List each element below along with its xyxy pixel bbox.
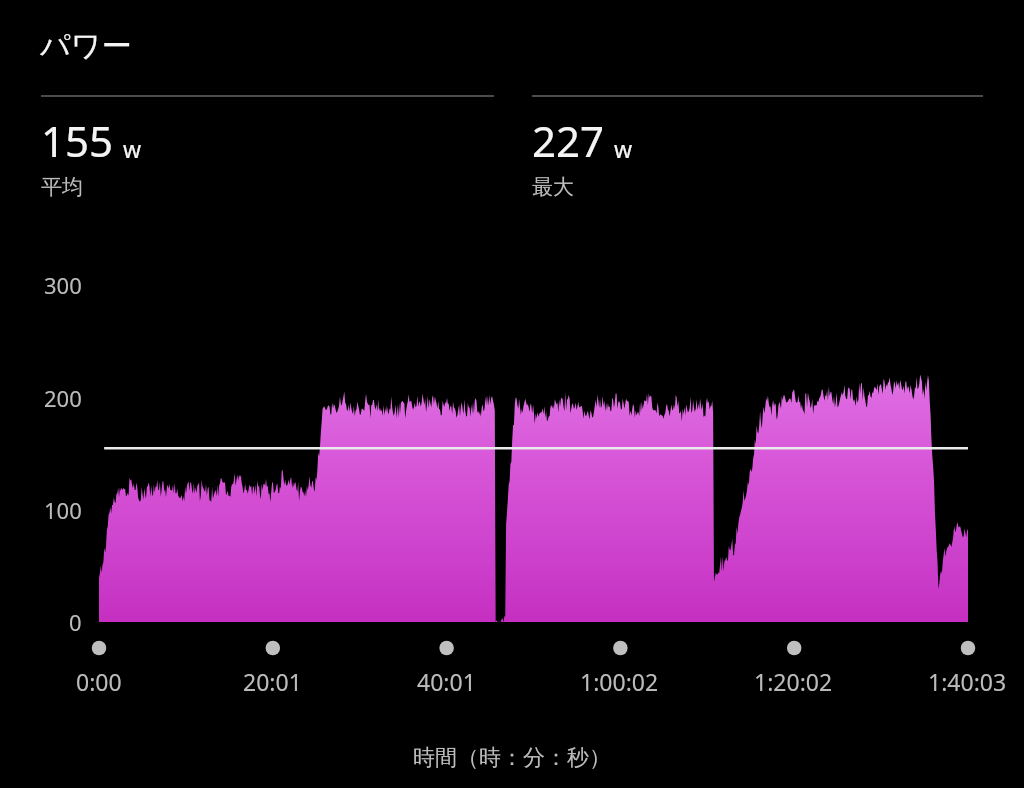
button[interactable]: 300 — [0, 244, 1024, 744]
staticText: 155 — [41, 112, 114, 169]
staticText: パワー — [40, 27, 132, 65]
staticText: 平均 — [41, 174, 83, 200]
staticText: 時間（時：分：秒） — [413, 744, 611, 772]
staticText: 0:00 — [76, 666, 122, 697]
staticText: 1:20:02 — [754, 666, 833, 697]
button[interactable]: 155 — [41, 95, 494, 200]
button[interactable]: パワー — [40, 27, 132, 65]
staticText: 20:01 — [243, 666, 302, 697]
staticText: 200 — [44, 383, 82, 413]
button[interactable]: 227 — [532, 95, 983, 200]
staticText: w — [614, 133, 633, 164]
staticText: 100 — [44, 495, 82, 525]
staticText: 0 — [69, 607, 82, 637]
staticText: 227 — [532, 112, 605, 169]
staticText: 1:40:03 — [928, 666, 1007, 697]
staticText: 1:00:02 — [580, 666, 659, 697]
staticText: 最大 — [532, 174, 574, 200]
staticText: 300 — [44, 270, 82, 300]
staticText: 40:01 — [417, 666, 476, 697]
staticText: w — [123, 133, 142, 164]
